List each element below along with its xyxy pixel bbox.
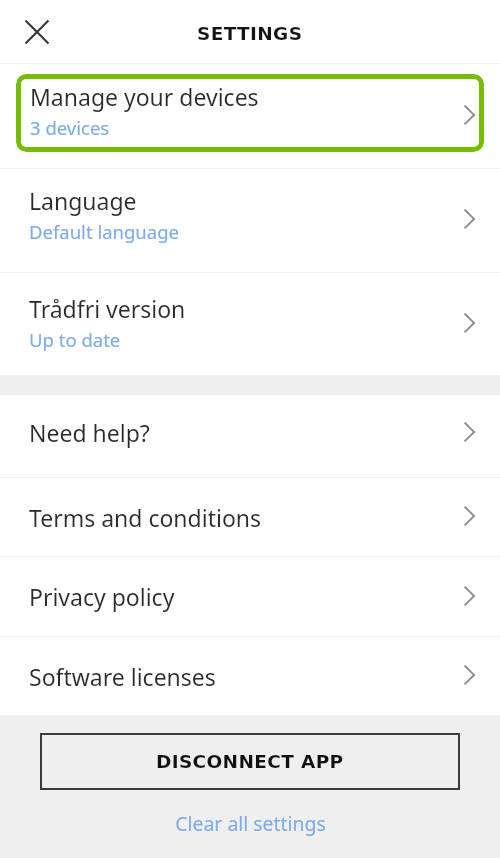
- button[interactable]: DISCONNECT APP: [40, 733, 460, 790]
- staticText: Need help?: [29, 417, 150, 448]
- staticText: DISCONNECT APP: [156, 751, 344, 773]
- staticText: Default language: [29, 219, 179, 244]
- button[interactable]: Clear all settings: [165, 805, 336, 841]
- staticText: Privacy policy: [29, 581, 175, 612]
- button[interactable]: Trådfri version: [0, 273, 500, 375]
- staticText: Terms and conditions: [29, 502, 262, 533]
- button[interactable]: Close: [13, 8, 60, 55]
- staticText: Clear all settings: [175, 810, 326, 836]
- staticText: Language: [29, 185, 137, 216]
- button[interactable]: Manage your devices: [16, 74, 484, 152]
- staticText: 3 devices: [30, 115, 110, 140]
- staticText: Manage your devices: [30, 81, 259, 112]
- button[interactable]: Language: [0, 169, 500, 272]
- staticText: SETTINGS: [197, 23, 303, 45]
- button[interactable]: Terms and conditions: [0, 478, 500, 556]
- button[interactable]: Need help?: [0, 395, 500, 477]
- staticText: Trådfri version: [29, 293, 186, 324]
- staticText: Software licenses: [29, 661, 216, 692]
- button[interactable]: Software licenses: [0, 637, 500, 715]
- button[interactable]: Privacy policy: [0, 557, 500, 636]
- staticText: Up to date: [29, 327, 121, 352]
